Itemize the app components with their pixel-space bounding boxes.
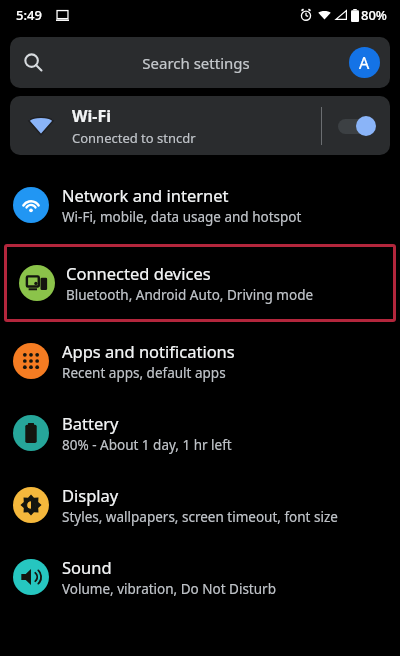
staticText: Wi-Fi: [72, 105, 111, 127]
staticText: Network and internet: [62, 184, 229, 206]
button[interactable]: Battery: [0, 397, 400, 469]
button[interactable]: Toggle Wi-Fi: [338, 116, 374, 136]
staticText: Display: [62, 484, 119, 506]
staticText: Sound: [62, 556, 112, 578]
button[interactable]: Account: [349, 47, 380, 78]
button[interactable]: Sound: [0, 541, 400, 613]
button[interactable]: Apps and notifications: [0, 325, 400, 397]
staticText: Connected devices: [66, 262, 211, 284]
staticText: Connected to stncdr: [72, 129, 196, 147]
button[interactable]: Wi-Fi: [10, 96, 390, 155]
staticText: 80%: [361, 6, 387, 24]
staticText: Volume, vibration, Do Not Disturb: [62, 580, 276, 598]
button[interactable]: Display: [0, 469, 400, 541]
button[interactable]: Search settings: [10, 37, 390, 88]
staticText: Recent apps, default apps: [62, 364, 226, 382]
staticText: Styles, wallpapers, screen timeout, font…: [62, 508, 338, 526]
staticText: Apps and notifications: [62, 340, 235, 362]
staticText: 5:49: [16, 6, 42, 24]
staticText: Battery: [62, 412, 119, 434]
staticText: Search settings: [43, 53, 349, 73]
button[interactable]: Network and internet: [0, 169, 400, 241]
staticText: A: [359, 52, 370, 74]
staticText: Bluetooth, Android Auto, Driving mode: [66, 286, 314, 304]
button[interactable]: Connected devices: [7, 247, 393, 319]
staticText: 80% - About 1 day, 1 hr left: [62, 436, 232, 454]
staticText: Wi-Fi, mobile, data usage and hotspot: [62, 208, 302, 226]
